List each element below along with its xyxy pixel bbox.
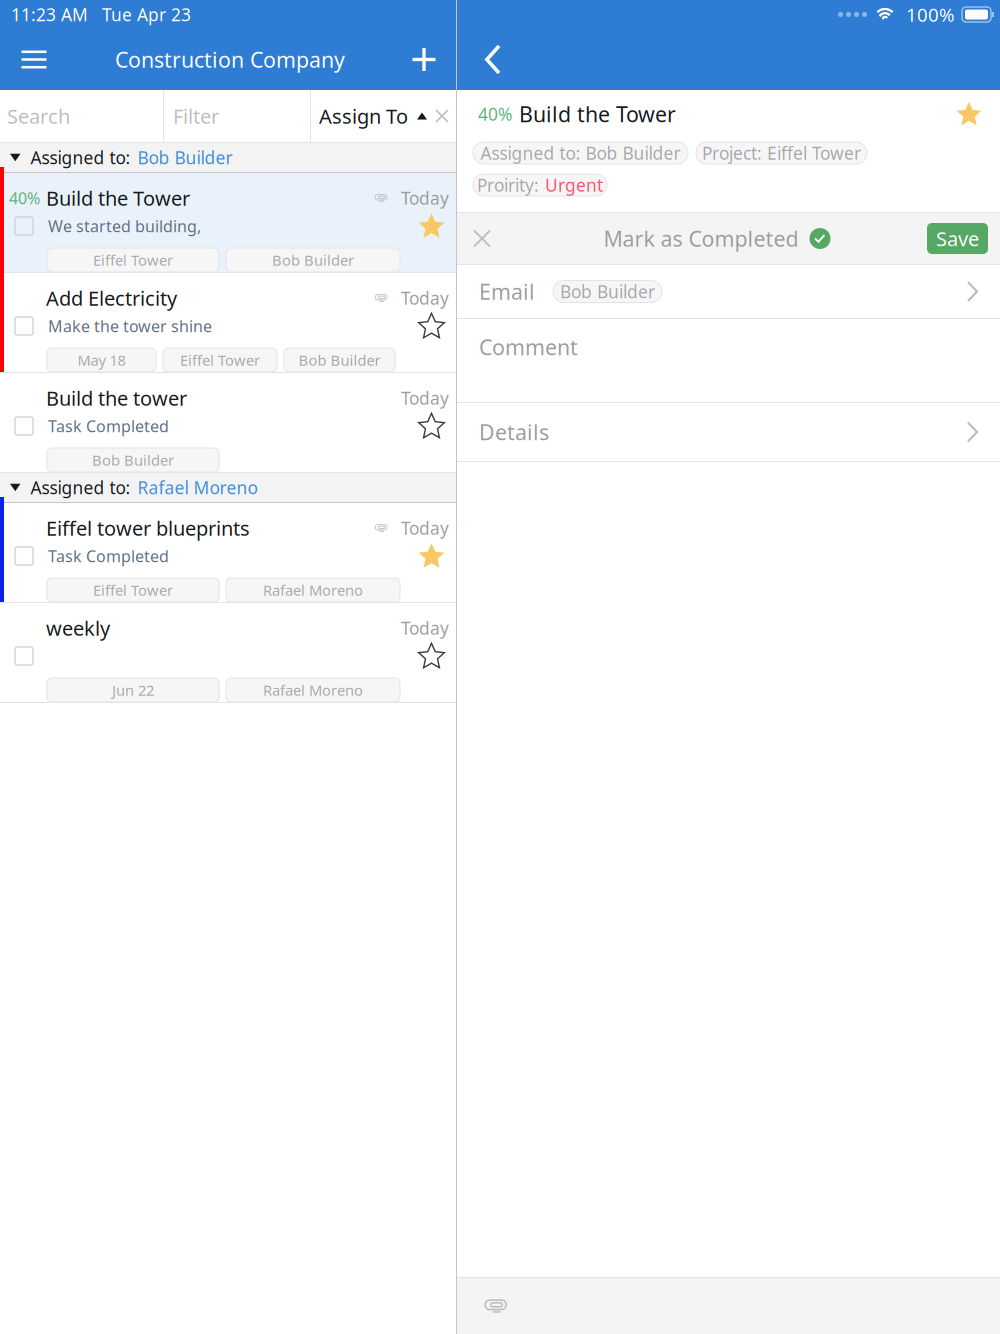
button[interactable]: weekly xyxy=(0,603,456,703)
staticText: May 18 xyxy=(77,350,125,370)
button[interactable]: Build the tower xyxy=(0,373,456,473)
staticText: weekly xyxy=(46,615,110,641)
button[interactable]: Email xyxy=(457,265,1000,319)
staticText: Bob Builder xyxy=(92,450,174,470)
staticText: Rafael Moreno xyxy=(263,580,363,600)
staticText: Jun 22 xyxy=(112,680,154,700)
button[interactable]: Attach file xyxy=(457,1278,535,1334)
staticText: Bob Builder xyxy=(272,250,354,270)
staticText: Filter xyxy=(173,103,219,129)
staticText: Tue Apr 23 xyxy=(102,3,191,26)
staticText: We started building, xyxy=(48,215,201,237)
staticText: Today xyxy=(401,516,449,539)
button[interactable]: 40% xyxy=(0,173,456,273)
staticText: Rafael Moreno xyxy=(263,680,363,700)
staticText: Bob Builder xyxy=(560,280,655,303)
staticText: Make the tower shine xyxy=(48,315,212,337)
staticText: Add Electricity xyxy=(46,285,177,311)
staticText: Assigned to: xyxy=(30,146,130,169)
staticText: Today xyxy=(401,616,449,639)
button[interactable]: Details xyxy=(457,403,1000,462)
staticText: 100% xyxy=(906,2,955,27)
button[interactable]: Close xyxy=(457,213,507,264)
staticText: Assign To xyxy=(319,103,408,129)
staticText: Build the tower xyxy=(46,385,187,411)
staticText: Eiffel Tower xyxy=(180,350,260,370)
button[interactable]: Eiffel tower blueprints xyxy=(0,503,456,603)
staticText: Proirity: xyxy=(477,173,539,196)
staticText: 40% xyxy=(478,102,512,125)
staticText: Today xyxy=(401,386,449,409)
staticText: Rafael Moreno xyxy=(137,476,257,499)
staticText: Comment xyxy=(479,333,578,361)
staticText: Assigned to: xyxy=(30,476,130,499)
staticText: Project: Eiffel Tower xyxy=(702,141,861,164)
button[interactable]: Back xyxy=(457,29,529,90)
staticText: Today xyxy=(401,186,449,209)
staticText: Bob Builder xyxy=(137,146,232,169)
staticText: 40% xyxy=(9,187,40,209)
staticText: Save xyxy=(936,225,979,252)
staticText: Assigned to: Bob Builder xyxy=(480,141,680,164)
staticText: Search xyxy=(7,103,70,129)
button[interactable]: Filter xyxy=(164,90,310,142)
button[interactable]: Save xyxy=(927,223,988,254)
staticText: Today xyxy=(401,286,449,309)
staticText: Eiffel Tower xyxy=(93,580,173,600)
staticText: Eiffel Tower xyxy=(93,250,173,270)
staticText: Build the Tower xyxy=(46,185,190,211)
staticText: Construction Company xyxy=(115,45,345,74)
button[interactable]: Menu xyxy=(0,29,68,90)
staticText: Task Completed xyxy=(48,415,169,437)
button[interactable]: Add task xyxy=(392,29,456,90)
staticText: Task Completed xyxy=(48,545,169,567)
staticText: Email xyxy=(479,277,535,306)
staticText: 11:23 AM xyxy=(11,3,88,26)
button[interactable]: Add Electricity xyxy=(0,273,456,373)
button[interactable]: Comment xyxy=(457,319,1000,403)
staticText: Urgent xyxy=(545,173,603,196)
staticText: Bob Builder xyxy=(298,350,380,370)
button[interactable]: Search xyxy=(0,90,163,142)
staticText: Mark as Completed xyxy=(603,224,798,253)
staticText: Details xyxy=(479,418,549,446)
button[interactable]: Assign To xyxy=(311,90,456,142)
staticText: Eiffel tower blueprints xyxy=(46,515,250,541)
staticText: Build the Tower xyxy=(519,100,676,128)
